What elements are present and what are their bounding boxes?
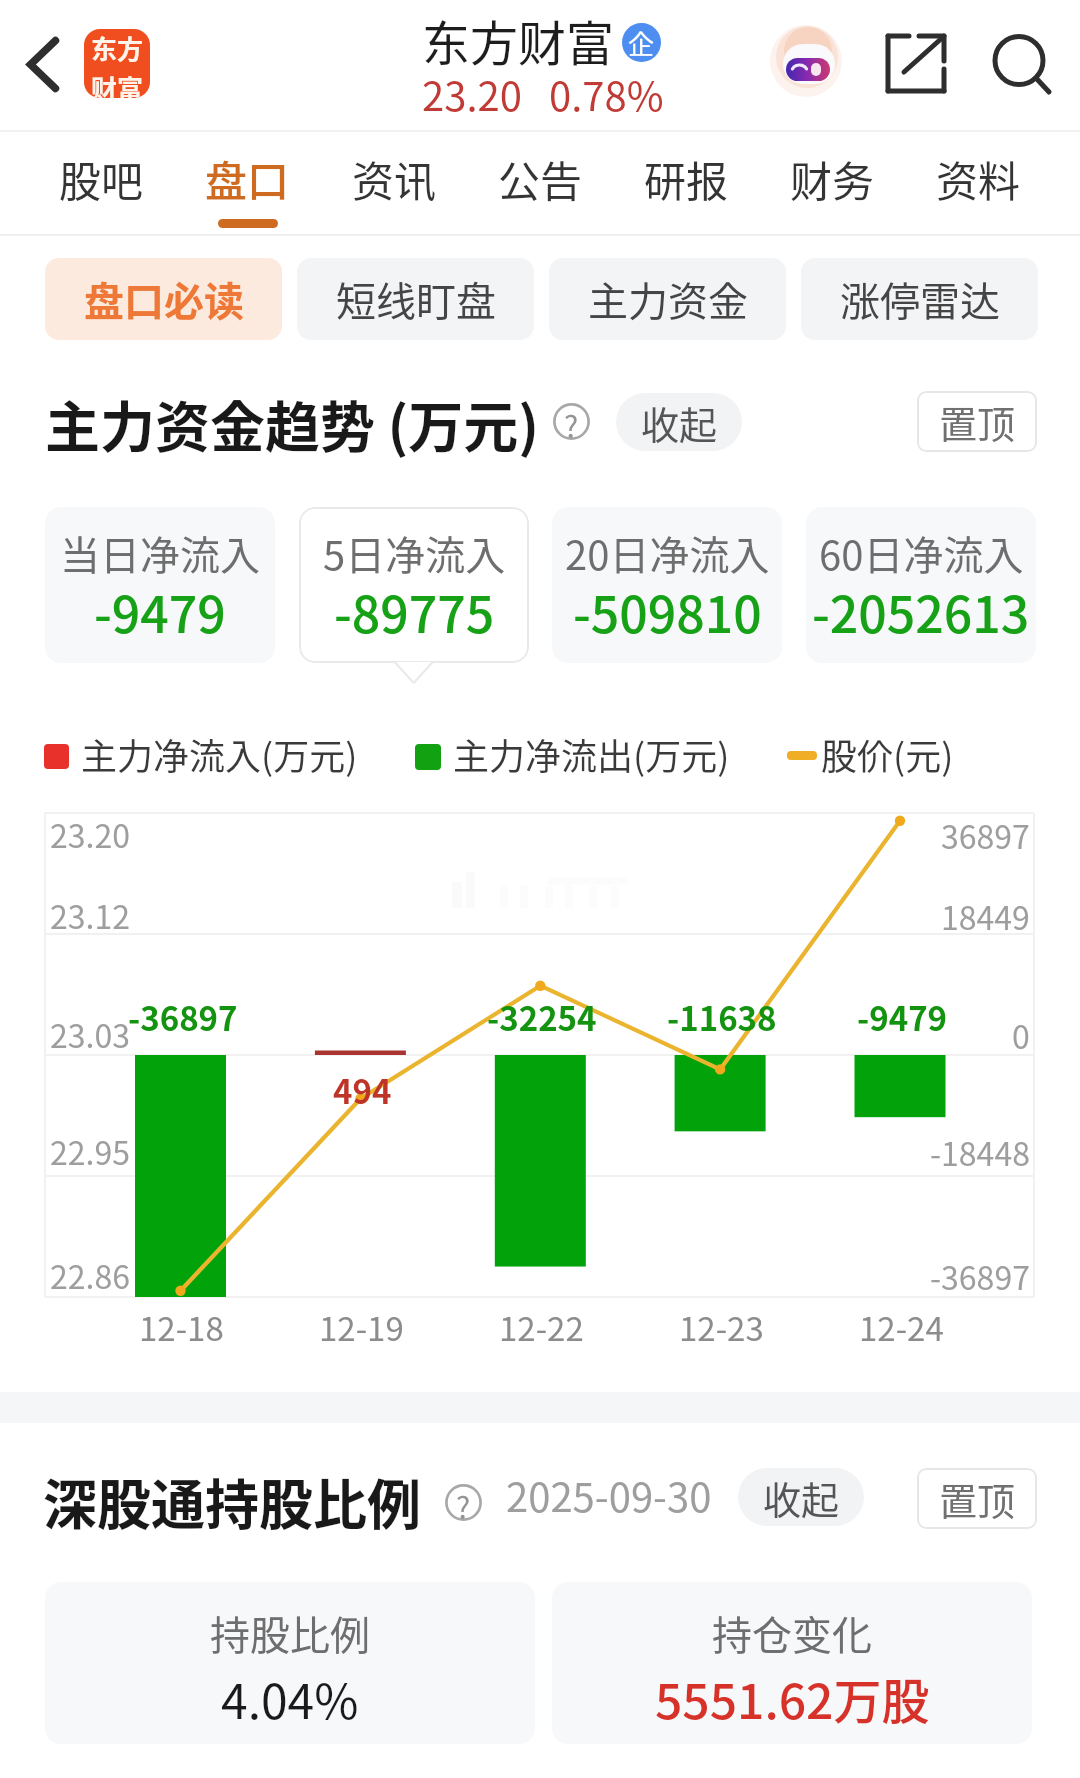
staticText: 23.03 <box>50 1011 130 1057</box>
button[interactable]: 5日净流入 <box>299 507 529 663</box>
staticText: -2052613 <box>812 575 1030 647</box>
staticText: -11638 <box>667 993 777 1041</box>
staticText: -32254 <box>487 993 597 1041</box>
staticText: 5551.62万股 <box>655 1663 930 1733</box>
staticText: 公告 <box>498 148 583 209</box>
button[interactable]: 盘口必读 <box>45 258 282 340</box>
staticText: 60日净流入 <box>819 524 1024 582</box>
staticText: 494 <box>333 1066 392 1114</box>
button[interactable]: Back <box>0 20 86 106</box>
button[interactable]: 资料 <box>915 133 1041 232</box>
button[interactable]: 持股比例 <box>45 1582 535 1744</box>
button[interactable]: 20日净流入 <box>552 507 782 663</box>
staticText: 深股通持股比例 <box>43 1462 421 1540</box>
staticText: 股吧 <box>59 148 144 209</box>
staticText: 0 <box>1012 1012 1030 1058</box>
staticText: 主力净流入(万元) <box>81 728 358 780</box>
staticText: 股价(元) <box>821 728 954 780</box>
button[interactable]: Search <box>975 14 1075 114</box>
button[interactable]: 60日净流入 <box>806 507 1036 663</box>
button[interactable]: 持仓变化 <box>552 1582 1032 1744</box>
button[interactable]: 财务 <box>769 133 895 232</box>
button[interactable]: 收起 <box>616 393 742 451</box>
button[interactable]: AI assistant <box>768 18 850 100</box>
staticText: ? <box>456 1484 471 1521</box>
staticText: 主力资金趋势 (万元) <box>45 383 540 463</box>
staticText: 研报 <box>644 148 729 209</box>
button[interactable]: East Money <box>84 29 150 98</box>
staticText: 主力资金 <box>588 270 748 328</box>
button[interactable]: Help <box>553 403 590 440</box>
button[interactable]: 盘口 <box>184 133 310 232</box>
staticText: 财富 <box>91 69 144 98</box>
button[interactable]: 当日净流入 <box>45 507 275 663</box>
button[interactable]: 收起 <box>738 1468 864 1526</box>
button[interactable]: Help <box>445 1484 482 1521</box>
staticText: 置顶 <box>939 394 1016 449</box>
staticText: 短线盯盘 <box>336 270 496 328</box>
staticText: 5日净流入 <box>323 524 506 582</box>
staticText: -36897 <box>930 1253 1030 1299</box>
staticText: 收起 <box>763 1470 840 1525</box>
staticText: 20日净流入 <box>565 524 770 582</box>
staticText: 收起 <box>641 395 718 450</box>
staticText: -89775 <box>334 575 495 647</box>
staticText: 4.04% <box>221 1663 359 1733</box>
staticText: ? <box>564 403 579 440</box>
staticText: -36897 <box>128 993 238 1041</box>
staticText: 资料 <box>936 148 1021 209</box>
button[interactable]: 置顶 <box>917 391 1037 452</box>
staticText: 盘口 <box>205 148 290 209</box>
button[interactable]: Share <box>866 14 966 114</box>
staticText: 12-23 <box>679 1303 764 1351</box>
staticText: 0.78% <box>549 65 664 123</box>
staticText: 东方 <box>91 29 144 67</box>
staticText: 当日净流入 <box>60 524 260 582</box>
staticText: 12-24 <box>859 1303 944 1351</box>
staticText: -509810 <box>573 575 762 647</box>
staticText: 持股比例 <box>210 1604 370 1662</box>
button[interactable]: 股吧 <box>38 133 164 232</box>
staticText: 盘口必读 <box>84 270 244 328</box>
staticText: 23.12 <box>50 892 130 938</box>
staticText: 企 <box>628 24 655 62</box>
staticText: -18448 <box>930 1129 1030 1175</box>
button[interactable]: 涨停雷达 <box>801 258 1038 340</box>
staticText: 涨停雷达 <box>840 270 1000 328</box>
staticText: 置顶 <box>939 1471 1016 1526</box>
staticText: 持仓变化 <box>712 1604 872 1662</box>
staticText: 18449 <box>941 893 1030 939</box>
staticText: 22.86 <box>50 1252 130 1298</box>
staticText: 资讯 <box>352 148 437 209</box>
button[interactable]: 公告 <box>477 133 603 232</box>
staticText: -9479 <box>857 993 948 1041</box>
staticText: 22.95 <box>50 1128 130 1174</box>
staticText: 财务 <box>790 148 875 209</box>
staticText: 主力净流出(万元) <box>453 728 730 780</box>
staticText: 东方财富 <box>422 5 615 75</box>
staticText: 12-19 <box>319 1303 404 1351</box>
button[interactable]: 主力资金 <box>549 258 786 340</box>
button[interactable]: 研报 <box>623 133 749 232</box>
button[interactable]: 短线盯盘 <box>297 258 534 340</box>
staticText: 2025-09-30 <box>506 1466 712 1524</box>
button[interactable]: 资讯 <box>331 133 457 232</box>
staticText: 36897 <box>941 812 1030 858</box>
staticText: -9479 <box>94 575 226 647</box>
staticText: 12-18 <box>139 1303 224 1351</box>
button[interactable]: 置顶 <box>917 1468 1037 1529</box>
staticText: 23.20 <box>422 65 522 123</box>
staticText: 12-22 <box>499 1303 584 1351</box>
staticText: 23.20 <box>50 811 130 857</box>
